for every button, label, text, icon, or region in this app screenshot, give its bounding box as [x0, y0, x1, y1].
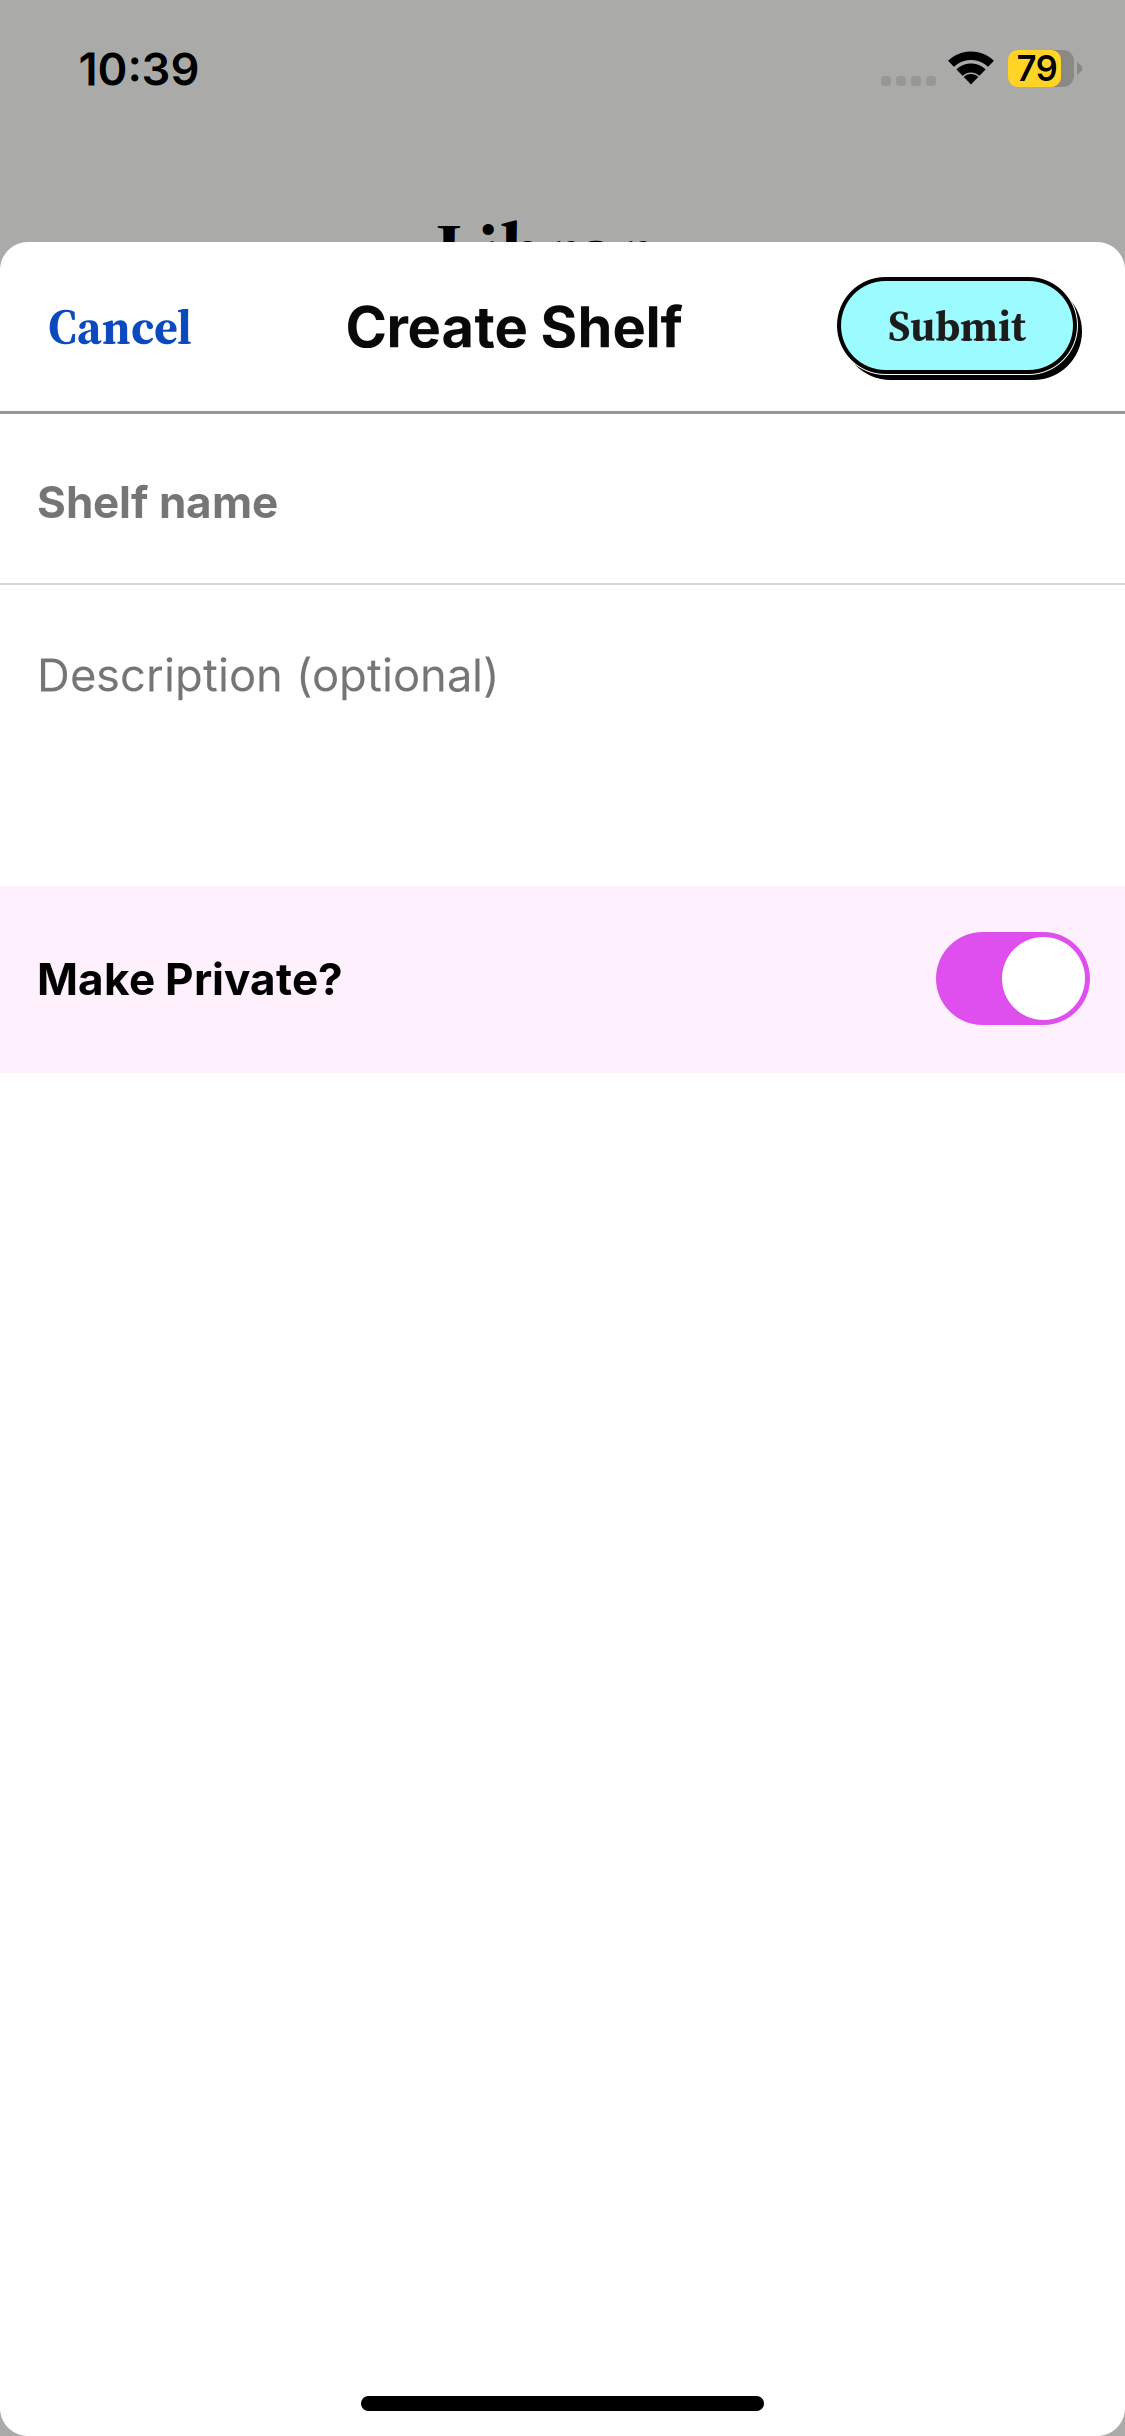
button[interactable]: Submit: [836, 276, 1084, 382]
button[interactable]: Shelf name: [0, 414, 1125, 583]
staticText: Cancel: [48, 294, 192, 360]
staticText: Shelf name: [37, 475, 278, 529]
staticText: Library: [435, 196, 689, 306]
staticText: 79: [1017, 47, 1057, 89]
staticText: Submit: [888, 296, 1026, 355]
button[interactable]: Description (optional): [0, 585, 1125, 886]
staticText: Description (optional): [37, 648, 500, 702]
staticText: Create Shelf: [345, 293, 682, 361]
button[interactable]: Cancel: [48, 277, 208, 377]
button[interactable]: Make Private?: [0, 886, 1125, 1073]
staticText: 10:39: [78, 42, 199, 96]
staticText: Make Private?: [37, 952, 343, 1006]
